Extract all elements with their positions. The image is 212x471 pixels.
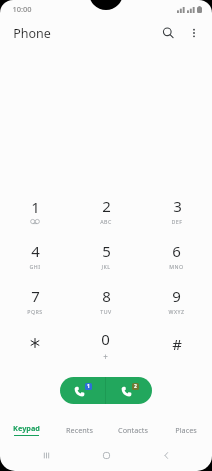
staticText: DEF: [171, 218, 183, 225]
staticText: 6: [172, 241, 181, 261]
button[interactable]: 9: [141, 278, 212, 323]
staticText: 8: [102, 286, 111, 306]
staticText: 4: [31, 241, 40, 261]
staticText: 1: [87, 383, 90, 390]
button[interactable]: Recents: [53, 416, 106, 443]
button[interactable]: 6: [141, 233, 212, 278]
staticText: Keypad: [13, 423, 40, 433]
button[interactable]: Places: [159, 416, 212, 443]
staticText: +: [103, 351, 108, 362]
button[interactable]: More options: [181, 20, 207, 46]
button[interactable]: Contacts: [106, 416, 159, 443]
button[interactable]: 3: [141, 188, 212, 233]
staticText: ABC: [100, 218, 112, 225]
button[interactable]: 0: [70, 323, 141, 368]
staticText: WXYZ: [168, 308, 185, 315]
button[interactable]: Keypad: [0, 416, 53, 443]
staticText: 0: [101, 329, 110, 349]
staticText: Recents: [66, 425, 93, 435]
button[interactable]: 5: [70, 233, 141, 278]
staticText: Contacts: [118, 425, 148, 435]
staticText: 10:00: [12, 4, 32, 14]
button[interactable]: Back: [152, 443, 180, 468]
staticText: 2: [102, 196, 111, 216]
staticText: #: [172, 334, 182, 351]
button[interactable]: 4: [0, 233, 70, 278]
button[interactable]: Search: [155, 20, 181, 46]
staticText: GHI: [29, 263, 41, 270]
staticText: 7: [31, 286, 40, 306]
staticText: 9: [172, 286, 181, 306]
staticText: 3: [173, 196, 182, 216]
staticText: 5: [102, 241, 111, 261]
button[interactable]: [0, 323, 70, 368]
button[interactable]: Call with SIM 2: [106, 377, 152, 404]
staticText: MNO: [169, 263, 184, 270]
staticText: JKL: [101, 263, 111, 270]
button[interactable]: Home: [92, 443, 120, 468]
button[interactable]: 2: [70, 188, 141, 233]
staticText: TUV: [100, 308, 112, 315]
staticText: Places: [175, 425, 197, 435]
button[interactable]: #: [141, 323, 212, 368]
staticText: Phone: [13, 25, 51, 42]
button[interactable]: 7: [0, 278, 70, 323]
staticText: 1: [31, 197, 40, 217]
button[interactable]: Call with SIM 1: [60, 377, 105, 404]
button[interactable]: 8: [70, 278, 141, 323]
button[interactable]: Recent apps: [32, 443, 60, 468]
staticText: PQRS: [27, 308, 43, 315]
staticText: 2: [134, 383, 137, 390]
button[interactable]: 1: [0, 188, 70, 233]
